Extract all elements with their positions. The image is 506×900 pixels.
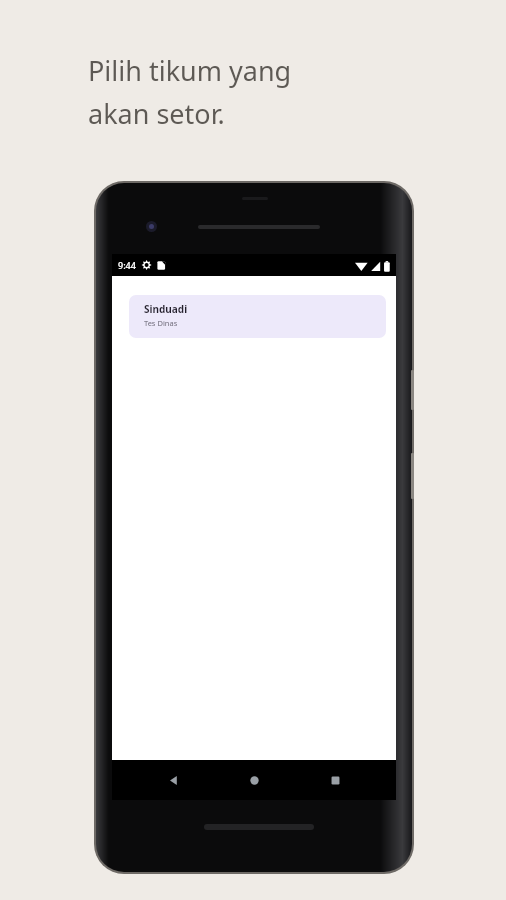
staticText: Sinduadi (144, 302, 188, 316)
staticText: Pilih tikum yang (88, 52, 292, 89)
staticText: Tes Dinas (144, 318, 178, 328)
staticText: 9:44 (118, 259, 136, 271)
staticText: akan setor. (88, 95, 225, 132)
other: Volume button (411, 453, 414, 499)
button[interactable]: Sinduadi (129, 295, 386, 338)
button[interactable]: Home (234, 760, 274, 800)
button[interactable]: Recent apps (315, 760, 355, 800)
other: Power button (411, 370, 414, 410)
button[interactable]: Back (153, 760, 193, 800)
